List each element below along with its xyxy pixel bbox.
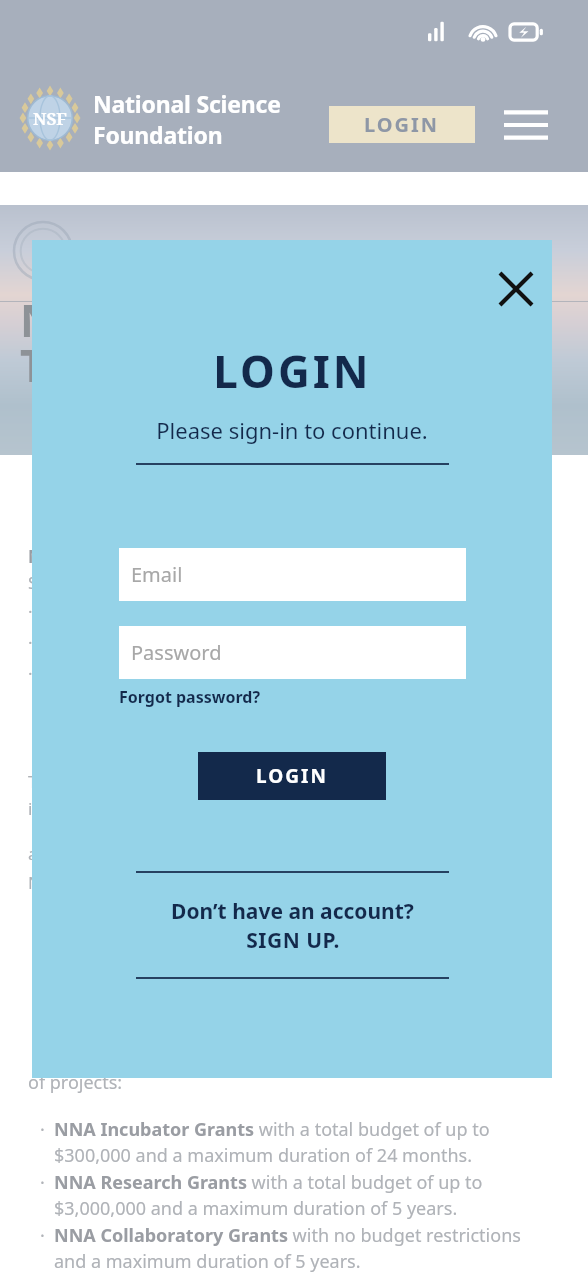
- staticText: Email: [131, 561, 183, 588]
- staticText: N: [20, 290, 56, 350]
- button[interactable]: LOGIN: [329, 106, 475, 143]
- staticText: ·: [28, 600, 33, 623]
- staticText: ·: [40, 1223, 54, 1248]
- staticText: of projects:: [28, 1070, 123, 1095]
- button[interactable]: Don’t have an account?: [171, 897, 414, 955]
- staticText: SIGN UP.: [246, 926, 340, 955]
- button[interactable]: Password: [119, 626, 466, 679]
- staticText: LOGIN: [213, 341, 372, 401]
- staticText: Don’t have an account?: [171, 897, 414, 926]
- staticText: Foundation: [93, 119, 223, 150]
- button[interactable]: Email: [119, 548, 466, 601]
- staticText: LOGIN: [364, 111, 440, 138]
- staticText: Please sign-in to continue.: [156, 415, 428, 445]
- staticText: Forgot password?: [119, 686, 261, 708]
- staticText: LOGIN: [256, 763, 328, 789]
- staticText: T: [20, 335, 46, 395]
- staticText: Password: [131, 639, 222, 666]
- staticText: i: [28, 797, 33, 820]
- button[interactable]: Menu: [500, 100, 552, 150]
- staticText: National Science: [93, 88, 281, 119]
- button[interactable]: Forgot password?: [119, 686, 261, 708]
- button[interactable]: LOGIN: [198, 752, 386, 800]
- staticText: N: [28, 871, 41, 894]
- staticText: ·: [40, 1170, 54, 1195]
- staticText: a: [28, 842, 38, 865]
- staticText: T: [28, 770, 38, 793]
- staticText: NNA Collaboratory Grants with no budget …: [54, 1223, 554, 1274]
- staticText: ·: [40, 1117, 54, 1142]
- staticText: NNA Research Grants with a total budget …: [54, 1170, 554, 1221]
- staticText: ·: [28, 662, 33, 685]
- button[interactable]: Close: [490, 263, 542, 315]
- staticText: N: [28, 545, 42, 568]
- staticText: ·: [28, 631, 33, 654]
- staticText: NSF: [33, 107, 67, 130]
- staticText: NNA Incubator Grants with a total budget…: [54, 1117, 554, 1168]
- staticText: S: [28, 571, 38, 594]
